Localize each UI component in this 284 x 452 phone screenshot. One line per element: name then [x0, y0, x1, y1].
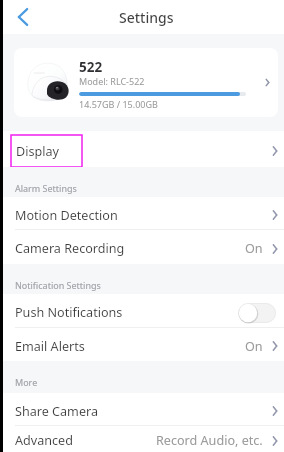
button[interactable]: Motion Detection: [0, 197, 284, 230]
staticText: Camera Recording: [15, 240, 125, 257]
button[interactable]: Share Camera: [0, 393, 284, 426]
staticText: Push Notifications: [15, 304, 123, 321]
staticText: 14.57GB / 15.00GB: [79, 98, 158, 110]
staticText: On: [245, 338, 263, 355]
staticText: More: [15, 376, 38, 388]
button[interactable]: Display: [0, 131, 284, 167]
staticText: Motion Detection: [15, 207, 118, 224]
staticText: Advanced: [15, 432, 73, 449]
staticText: Display: [16, 143, 59, 160]
button[interactable]: Camera Recording: [0, 230, 284, 264]
staticText: Record Audio, etc.: [156, 432, 263, 449]
staticText: Settings: [119, 8, 174, 27]
staticText: Model: RLC-522: [79, 75, 145, 87]
staticText: Notification Settings: [15, 279, 101, 291]
staticText: Alarm Settings: [15, 182, 77, 194]
button[interactable]: Push Notifications toggle: [238, 303, 276, 323]
button[interactable]: Back: [10, 4, 36, 30]
button[interactable]: Email Alerts: [0, 328, 284, 361]
staticText: Share Camera: [15, 403, 99, 420]
staticText: Email Alerts: [15, 338, 85, 355]
button[interactable]: 522: [14, 48, 278, 117]
button[interactable]: Advanced: [0, 426, 284, 452]
staticText: 522: [79, 58, 103, 76]
staticText: On: [245, 240, 263, 257]
